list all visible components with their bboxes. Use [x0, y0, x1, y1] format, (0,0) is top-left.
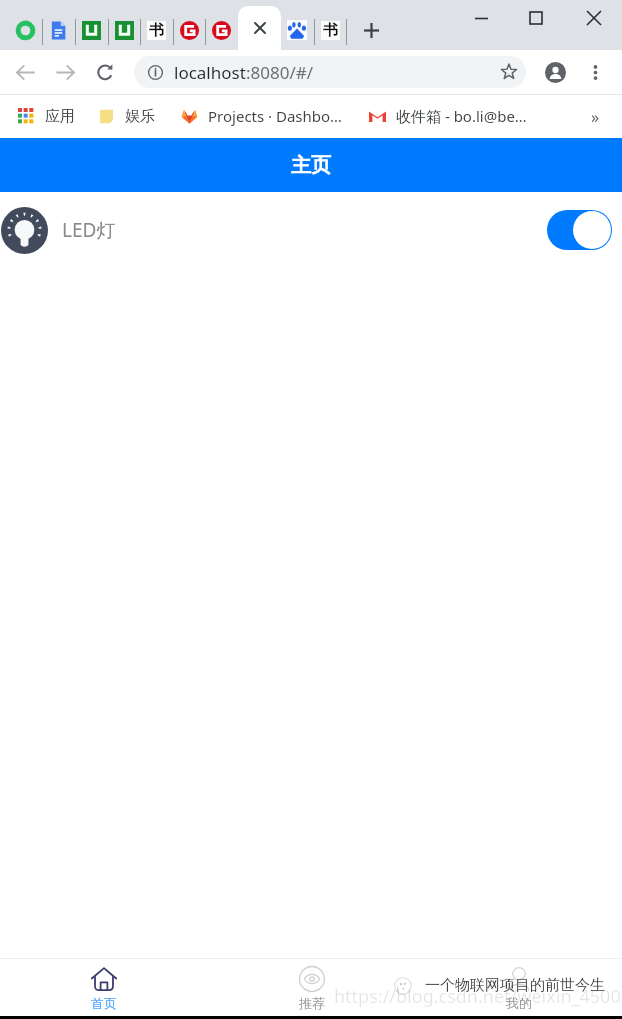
button[interactable]: Tab [140, 14, 172, 46]
button[interactable]: Forward [49, 56, 81, 88]
button[interactable]: 首页 [0, 959, 208, 1016]
staticText: :8080/#/ [246, 61, 314, 84]
staticText: 娱乐 [125, 107, 155, 126]
button[interactable]: Bookmark [496, 59, 522, 85]
staticText: https://blog.csdn.net/weixin_45006076 [334, 984, 622, 1009]
button[interactable]: Tab [281, 14, 313, 46]
staticText: » [591, 106, 600, 128]
staticText: 应用 [45, 107, 75, 126]
button[interactable]: Tab [205, 14, 237, 46]
staticText: 收件箱 - bo.li@be… [396, 106, 527, 126]
button[interactable]: 推荐 [208, 959, 415, 1016]
button[interactable]: Projects · Dashbo… [176, 101, 347, 131]
button[interactable]: Back [9, 56, 41, 88]
staticText: 推荐 [299, 995, 325, 1011]
staticText: LED灯 [62, 217, 116, 243]
button[interactable]: Close window [571, 0, 617, 36]
button[interactable]: New tab [357, 16, 386, 45]
button[interactable]: LED灯 [0, 192, 622, 268]
staticText: 我的 [506, 995, 532, 1011]
button[interactable]: More bookmarks [581, 103, 609, 131]
button[interactable]: 娱乐 [93, 101, 160, 131]
staticText: 主页 [291, 153, 331, 178]
button[interactable]: Tab [173, 14, 205, 46]
button[interactable]: More options [579, 56, 611, 88]
staticText: localhost [174, 61, 246, 84]
button[interactable]: Tab [314, 14, 346, 46]
staticText: 书 [323, 21, 338, 40]
staticText: 首页 [91, 995, 117, 1011]
button[interactable]: Minimize [458, 0, 504, 36]
staticText: 书 [149, 21, 164, 40]
staticText: 一个物联网项目的前世今生 [425, 976, 605, 995]
button[interactable]: LED toggle [547, 210, 612, 250]
button[interactable]: Close tab [238, 6, 281, 50]
button[interactable]: Maximize [513, 0, 559, 36]
button[interactable]: Tab [42, 14, 74, 46]
button[interactable]: 应用 [13, 101, 80, 131]
button[interactable]: Tab [75, 14, 107, 46]
button[interactable]: 主页 [0, 138, 622, 192]
button[interactable]: 收件箱 - bo.li@be… [364, 101, 532, 131]
button[interactable]: localhost [134, 56, 526, 88]
button[interactable]: Profile [539, 56, 571, 88]
button[interactable]: Tab [9, 14, 41, 46]
button[interactable]: 我的 [415, 959, 622, 1016]
staticText: Projects · Dashbo… [208, 106, 342, 126]
button[interactable]: Reload [90, 56, 122, 88]
button[interactable]: Tab [108, 14, 140, 46]
